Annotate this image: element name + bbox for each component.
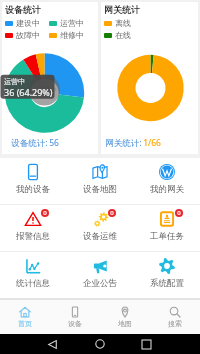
staticText: 首页: [18, 319, 32, 328]
button[interactable]: 搜索: [150, 300, 200, 334]
staticText: 网关统计:: [104, 137, 143, 149]
button[interactable]: Recents: [142, 340, 151, 349]
button[interactable]: 我的设备: [0, 158, 66, 204]
staticText: 网关统计: [104, 4, 140, 15]
staticText: 36 (64.29%): [4, 86, 55, 98]
button[interactable]: 设备: [50, 300, 100, 334]
staticText: 我的设备: [16, 184, 50, 195]
staticText: 运营中: [34, 86, 58, 95]
button[interactable]: 首页: [0, 300, 50, 334]
staticText: 0: [110, 209, 114, 217]
staticText: 56: [49, 137, 59, 149]
staticText: 地图: [118, 319, 132, 328]
button[interactable]: 0: [133, 205, 200, 251]
staticText: 工单任务: [150, 231, 184, 242]
staticText: 我的网关: [150, 184, 184, 195]
staticText: 系统配置: [150, 278, 184, 289]
button[interactable]: 系统配置: [133, 252, 200, 298]
staticText: 故障中: [16, 30, 40, 40]
button[interactable]: Back: [48, 340, 57, 349]
staticText: 1/66: [143, 137, 161, 149]
staticText: 运营中: [60, 18, 84, 28]
staticText: 维修中: [60, 30, 84, 40]
staticText: 搜索: [168, 319, 182, 328]
staticText: 设备运维: [83, 231, 117, 242]
staticText: 离线: [115, 18, 131, 28]
staticText: 建设中: [16, 18, 40, 28]
button[interactable]: 我的网关: [133, 158, 200, 204]
button[interactable]: 0: [66, 205, 133, 251]
staticText: 在线: [115, 30, 131, 40]
staticText: 0: [43, 209, 47, 217]
staticText: 报警信息: [16, 231, 50, 242]
button[interactable]: Home: [95, 339, 105, 349]
staticText: 运营中: [4, 77, 55, 86]
staticText: 企业公告: [83, 278, 117, 289]
button[interactable]: 统计信息: [0, 252, 66, 298]
staticText: 设备统计: [5, 4, 41, 15]
staticText: 设备统计:: [10, 137, 49, 149]
button[interactable]: 地图: [100, 300, 150, 334]
staticText: 0: [177, 209, 181, 217]
button[interactable]: 0: [0, 205, 66, 251]
staticText: 统计信息: [16, 278, 50, 289]
staticText: 设备地图: [83, 184, 117, 195]
button[interactable]: 设备地图: [66, 158, 133, 204]
button[interactable]: 企业公告: [66, 252, 133, 298]
staticText: 设备: [68, 319, 82, 328]
